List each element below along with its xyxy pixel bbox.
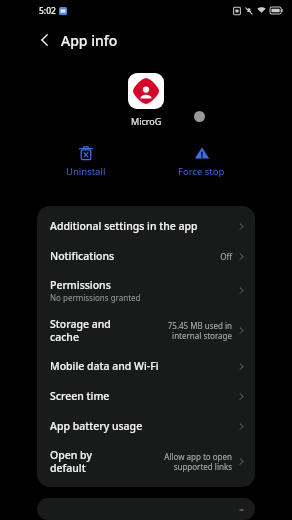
staticText: Notifications: [50, 249, 115, 263]
button[interactable]: Back: [32, 27, 58, 53]
staticText: Screen time: [50, 389, 110, 403]
staticText: 75.45 MB used in internal storage: [141, 320, 232, 342]
button[interactable]: App battery usage: [37, 411, 255, 441]
staticText: Mobile data and Wi-Fi: [50, 359, 159, 373]
button[interactable]: Storage and cache: [37, 310, 255, 351]
staticText: MicroG: [131, 115, 162, 127]
button[interactable]: App state: [194, 111, 205, 122]
staticText: Off: [200, 251, 232, 262]
staticText: Permissions: [50, 278, 111, 292]
staticText: App battery usage: [50, 419, 143, 433]
staticText: Force stop: [178, 165, 225, 178]
staticText: Allow app to open supported links: [134, 451, 232, 473]
button[interactable]: Notifications: [37, 241, 255, 271]
staticText: 5:02: [39, 5, 56, 17]
button[interactable]: Uninstall: [60, 143, 112, 180]
button[interactable]: Additional settings in the app: [37, 211, 255, 241]
button[interactable]: Force stop: [172, 143, 231, 180]
button[interactable]: Screen time: [37, 381, 255, 411]
staticText: Open by default: [50, 448, 130, 475]
button[interactable]: Unused app settings: [37, 503, 255, 515]
staticText: Storage and cache: [50, 317, 137, 344]
staticText: No permissions granted: [50, 292, 141, 303]
staticText: Uninstall: [66, 165, 106, 178]
staticText: App info: [61, 31, 118, 50]
button[interactable]: Permissions: [37, 271, 255, 310]
staticText: Additional settings in the app: [50, 219, 198, 233]
button[interactable]: Mobile data and Wi-Fi: [37, 351, 255, 381]
button[interactable]: Open by default: [37, 441, 255, 482]
